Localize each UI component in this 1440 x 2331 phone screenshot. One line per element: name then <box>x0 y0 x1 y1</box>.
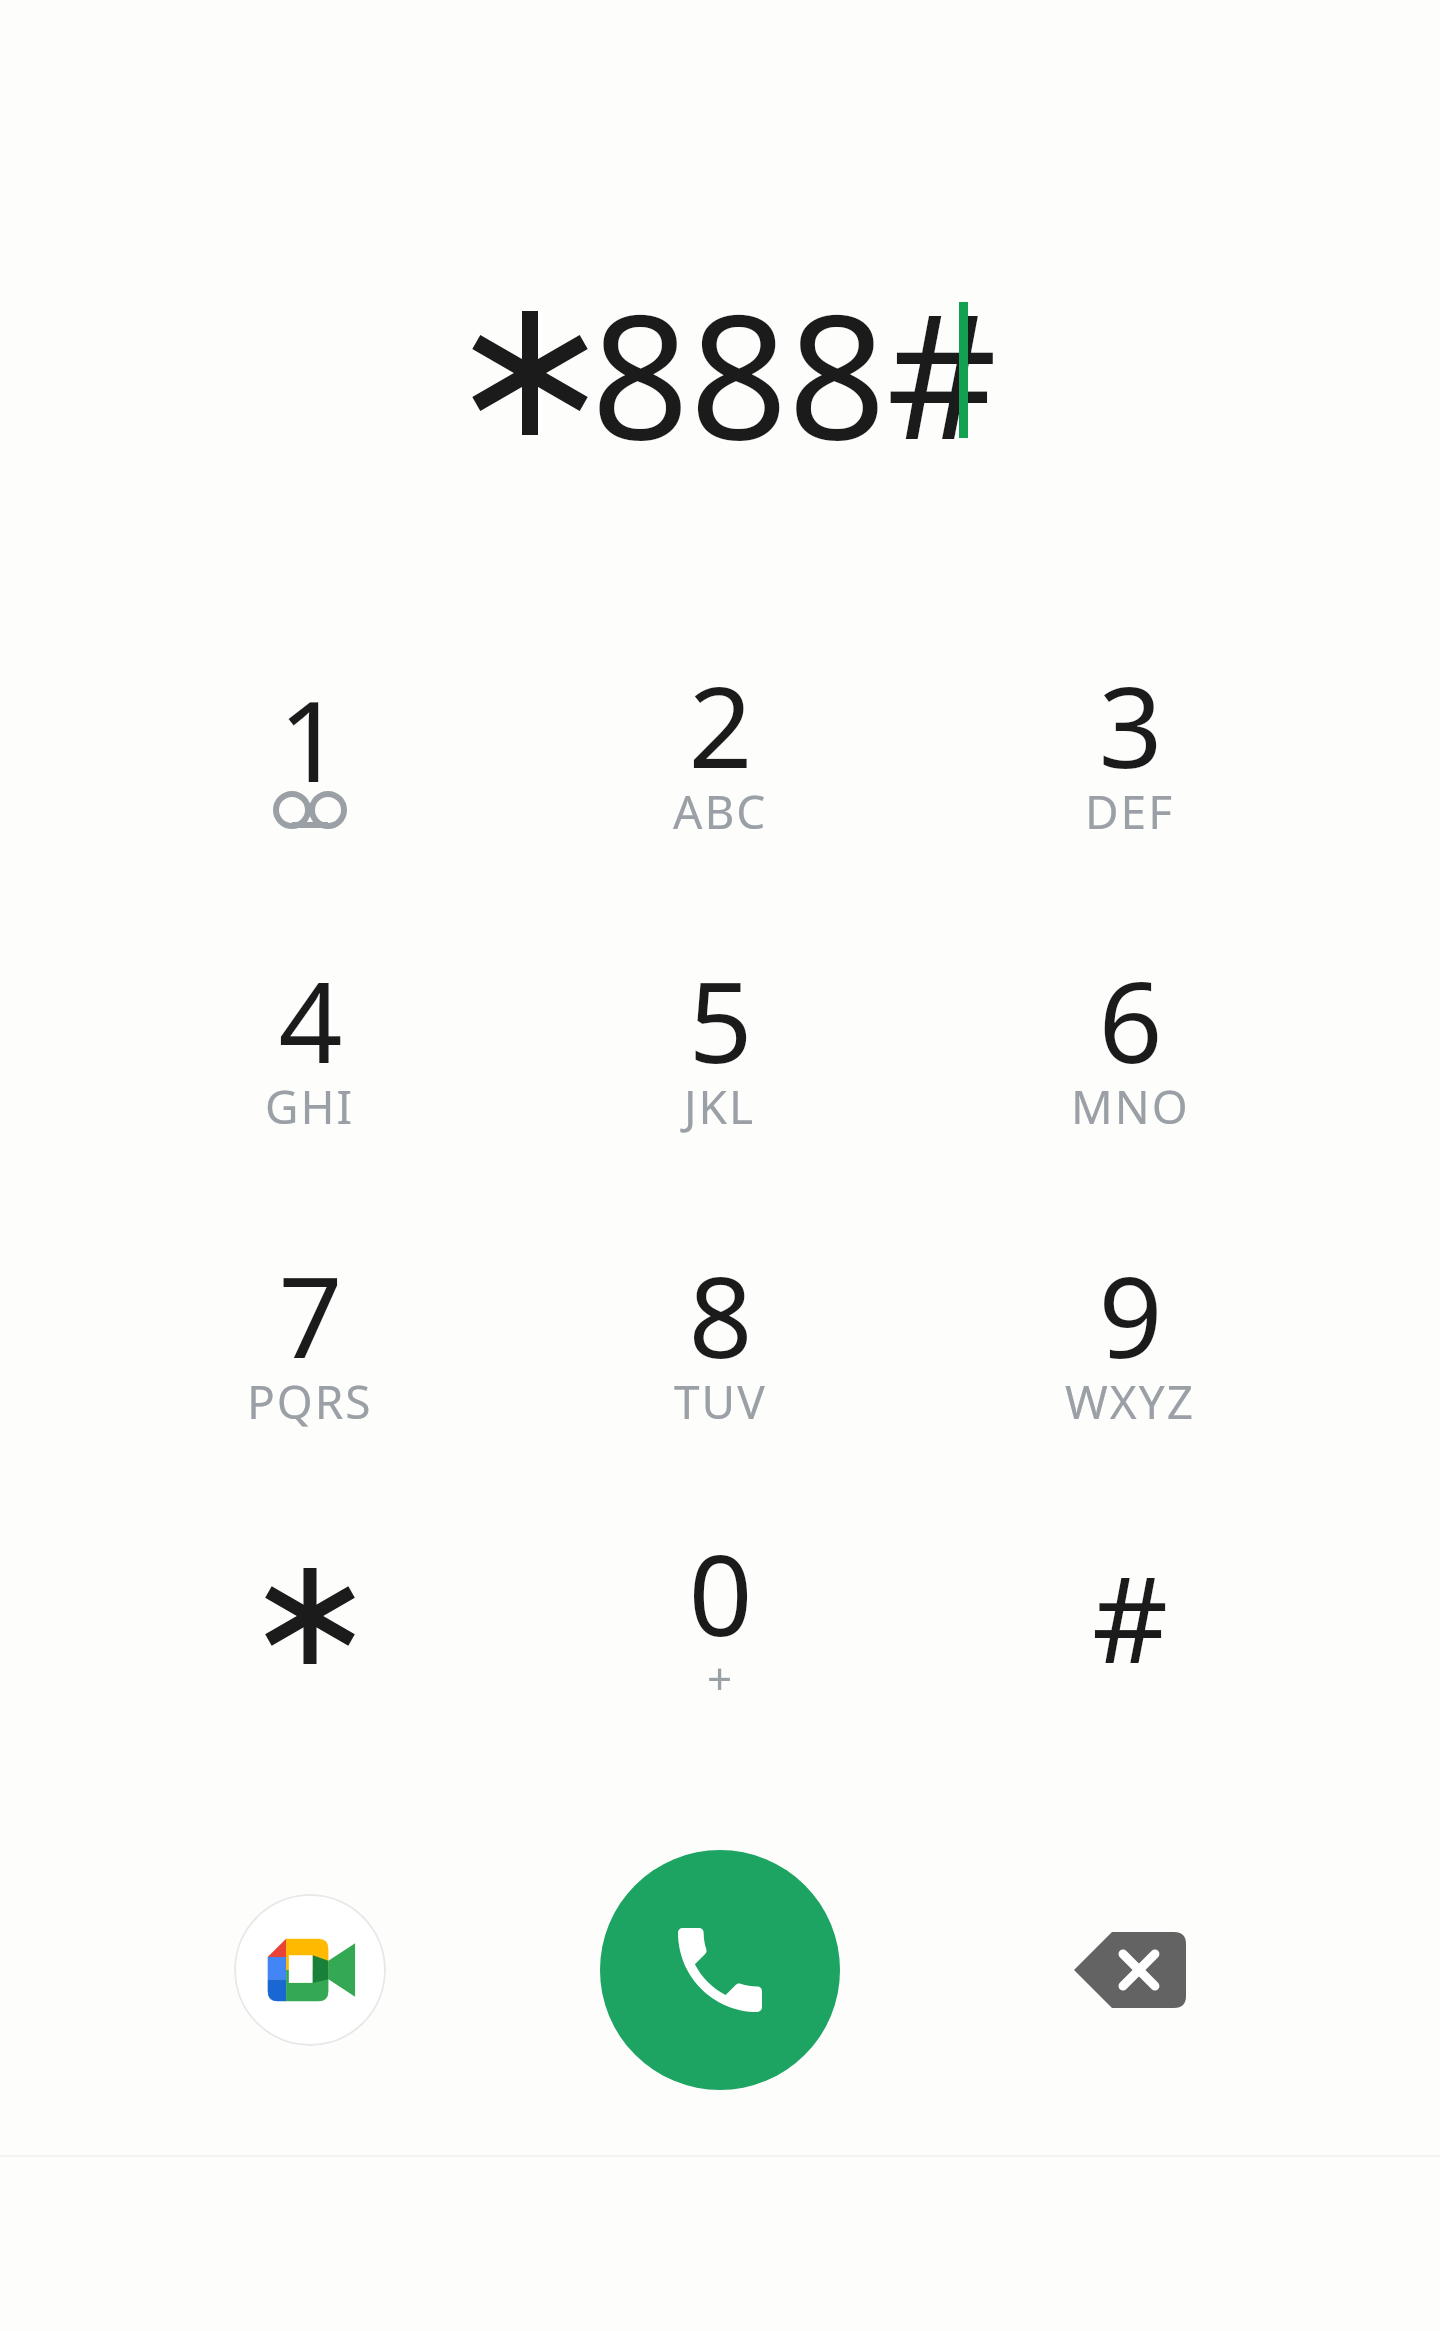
staticText: # <box>1092 1537 1169 1687</box>
button[interactable]: Key 4 <box>145 900 475 1180</box>
staticText: 3 <box>1098 648 1163 780</box>
staticText: 0 <box>688 1516 753 1648</box>
staticText: ABC <box>673 780 768 843</box>
button[interactable]: Key 8 <box>555 1195 885 1475</box>
button[interactable]: Call <box>600 1850 840 2090</box>
staticText: PQRS <box>247 1370 373 1433</box>
staticText: 6 <box>1098 943 1163 1075</box>
button[interactable]: Backspace <box>1020 1890 1240 2050</box>
staticText: 1 <box>278 662 343 784</box>
staticText: WXYZ <box>1065 1370 1196 1433</box>
button[interactable]: Key 5 <box>555 900 885 1180</box>
staticText: DEF <box>1085 780 1175 843</box>
staticText: 7 <box>278 1238 343 1370</box>
button[interactable]: Key 7 <box>145 1195 475 1475</box>
button[interactable]: Key 0 <box>555 1472 885 1752</box>
button[interactable]: Key # <box>965 1472 1295 1752</box>
staticText: 9 <box>1098 1238 1163 1370</box>
staticText: 5 <box>688 943 753 1075</box>
staticText: + <box>707 1648 735 1708</box>
staticText: TUV <box>674 1370 767 1433</box>
button[interactable]: Key * <box>145 1472 475 1752</box>
staticText: JKL <box>684 1075 756 1138</box>
staticText: 2 <box>688 648 753 780</box>
staticText: MNO <box>1071 1075 1190 1138</box>
staticText: 4 <box>278 943 343 1075</box>
button[interactable]: Key 6 <box>965 900 1295 1180</box>
button[interactable]: Video call with Google Meet <box>234 1894 386 2046</box>
button[interactable]: Key 2 <box>555 605 885 885</box>
button[interactable]: Key 9 <box>965 1195 1295 1475</box>
button[interactable]: Key 1 <box>145 605 475 885</box>
staticText: 888# <box>591 255 998 485</box>
staticText: GHI <box>265 1075 355 1138</box>
staticText: 8 <box>688 1238 753 1370</box>
button[interactable]: Key 3 <box>965 605 1295 885</box>
